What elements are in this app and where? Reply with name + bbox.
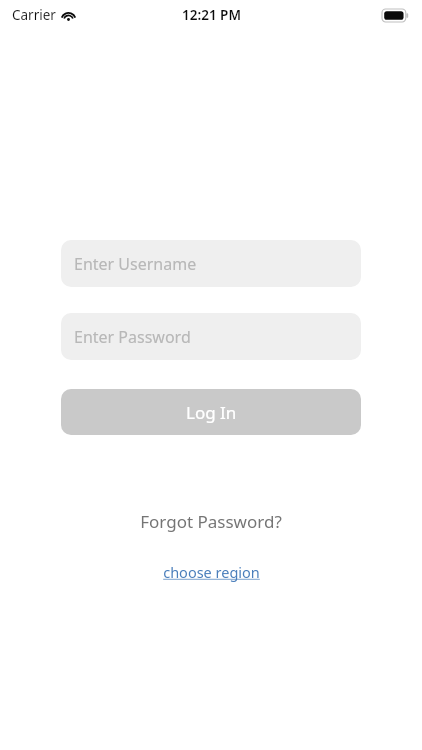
staticText: Carrier bbox=[12, 6, 56, 24]
button[interactable]: Forgot Password? bbox=[130, 507, 292, 536]
button[interactable]: Enter Username bbox=[61, 240, 361, 287]
staticText: Enter Username bbox=[74, 253, 197, 275]
button[interactable]: Log In bbox=[61, 389, 361, 435]
staticText: Log In bbox=[186, 401, 237, 424]
staticText: Enter Password bbox=[74, 326, 191, 348]
button[interactable]: choose region bbox=[155, 560, 268, 584]
button[interactable]: Enter Password bbox=[61, 313, 361, 360]
staticText: Forgot Password? bbox=[140, 510, 282, 533]
staticText: 12:21 PM bbox=[182, 6, 241, 24]
staticText: choose region bbox=[163, 562, 260, 582]
